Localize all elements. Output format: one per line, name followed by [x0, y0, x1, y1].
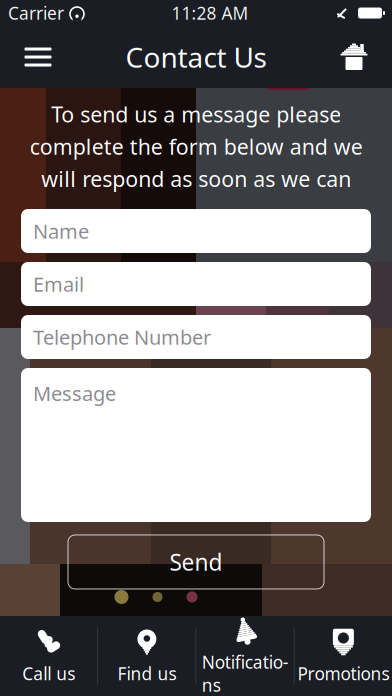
staticText: 11:28 AM: [171, 1, 248, 24]
staticText: Carrier: [8, 1, 64, 24]
staticText: Email: [33, 271, 84, 297]
button[interactable]: Message: [21, 368, 371, 522]
button[interactable]: Find us: [98, 616, 195, 696]
button[interactable]: Call us: [0, 616, 97, 696]
button[interactable]: Home: [327, 26, 381, 88]
staticText: Contact Us: [125, 38, 266, 76]
staticText: To send us a message please complete the…: [29, 100, 362, 193]
staticText: Message: [33, 380, 116, 407]
button[interactable]: Notifications: [196, 616, 294, 696]
staticText: Promotions: [297, 662, 389, 685]
staticText: Call us: [22, 662, 75, 685]
staticText: Find us: [117, 662, 176, 685]
button[interactable]: Menu: [11, 26, 65, 88]
staticText: Send: [169, 547, 222, 577]
button[interactable]: Email: [21, 262, 371, 306]
staticText: Name: [33, 218, 89, 244]
button[interactable]: Promotions: [295, 616, 392, 696]
staticText: Notifications: [202, 650, 289, 696]
button[interactable]: Telephone Number: [21, 315, 371, 359]
button[interactable]: Send: [68, 535, 324, 589]
staticText: Telephone Number: [33, 324, 211, 350]
button[interactable]: Name: [21, 209, 371, 253]
